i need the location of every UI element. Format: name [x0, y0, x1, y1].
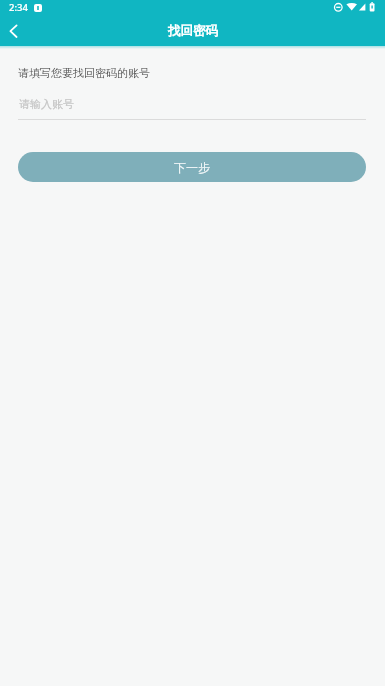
button[interactable]: 请输入账号: [0, 92, 385, 120]
staticText: 请输入账号: [19, 97, 74, 111]
staticText: 下一步: [174, 160, 210, 175]
button[interactable]: 下一步: [18, 152, 366, 182]
button[interactable]: [0, 22, 36, 46]
staticText: 请填写您要找回密码的账号: [18, 66, 150, 80]
staticText: 找回密码: [168, 23, 218, 39]
staticText: 2:34: [9, 1, 28, 14]
